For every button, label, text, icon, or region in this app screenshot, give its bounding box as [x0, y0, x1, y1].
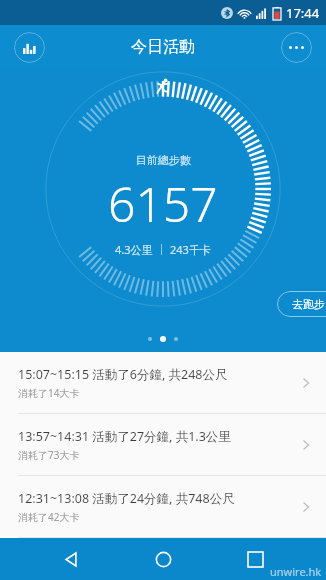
staticText: 243千卡	[170, 242, 211, 257]
button[interactable]: Back	[50, 538, 92, 580]
staticText: 消耗了73大卡	[18, 448, 80, 462]
staticText: 17:44	[286, 4, 320, 22]
button[interactable]: Home	[142, 538, 184, 580]
button[interactable]: Statistics	[14, 32, 45, 63]
button[interactable]: 去跑步	[277, 291, 326, 317]
button[interactable]: 12:31~13:08 活動了24分鐘, 共748公尺	[0, 476, 326, 537]
button[interactable]: 15:07~15:15 活動了6分鐘, 共248公尺	[0, 352, 326, 413]
staticText: 消耗了14大卡	[18, 386, 80, 400]
staticText: 6157	[108, 171, 218, 236]
staticText: 消耗了42大卡	[18, 510, 80, 524]
staticText: unwire.hk	[270, 564, 322, 579]
staticText: 去跑步	[292, 297, 325, 311]
staticText: 今日活動	[131, 37, 195, 57]
button[interactable]: More options	[281, 32, 312, 63]
staticText: 4.3公里	[115, 242, 153, 257]
staticText: 13:57~14:31 活動了27分鐘, 共1.3公里	[18, 428, 231, 445]
staticText: 目前總步數	[136, 153, 191, 167]
staticText: 12:31~13:08 活動了24分鐘, 共748公尺	[18, 490, 235, 507]
button[interactable]: Recent apps	[234, 538, 276, 580]
button[interactable]: 13:57~14:31 活動了27分鐘, 共1.3公里	[0, 414, 326, 475]
staticText: 15:07~15:15 活動了6分鐘, 共248公尺	[18, 366, 228, 383]
